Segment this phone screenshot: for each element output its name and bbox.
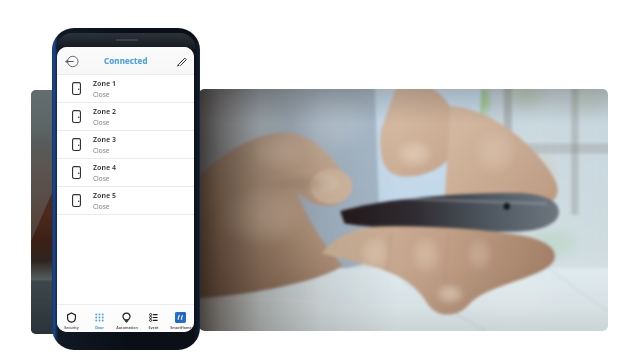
button[interactable]: Disconnect xyxy=(63,53,79,69)
staticText: SmartHome xyxy=(170,325,192,330)
button[interactable]: Automation xyxy=(113,308,140,330)
button[interactable]: SmartHome xyxy=(167,308,194,330)
button[interactable]: Edit xyxy=(173,53,189,69)
staticText: Zone 1 xyxy=(93,79,116,89)
button[interactable]: Zone 4 xyxy=(57,159,194,187)
staticText: Zone 3 xyxy=(93,135,116,145)
button[interactable]: Zone 1 xyxy=(57,75,194,103)
staticText: Close xyxy=(93,146,110,155)
staticText: Close xyxy=(93,118,110,127)
button[interactable]: Door xyxy=(85,308,113,330)
staticText: Zone 5 xyxy=(93,191,116,201)
staticText: Zone 4 xyxy=(93,163,116,173)
button[interactable]: Zone 2 xyxy=(57,103,194,131)
staticText: Connected xyxy=(104,55,148,66)
staticText: Event xyxy=(148,325,159,330)
button[interactable]: Security xyxy=(57,308,85,330)
button[interactable]: Event xyxy=(140,308,167,330)
button[interactable]: Zone 5 xyxy=(57,187,194,215)
staticText: Close xyxy=(93,90,110,99)
staticText: Zone 2 xyxy=(93,107,116,117)
button[interactable]: Zone 3 xyxy=(57,131,194,159)
staticText: Automation xyxy=(116,325,138,330)
staticText: Close xyxy=(93,174,110,183)
staticText: Door xyxy=(95,325,104,330)
staticText: Security xyxy=(64,325,79,330)
staticText: Close xyxy=(93,202,110,211)
